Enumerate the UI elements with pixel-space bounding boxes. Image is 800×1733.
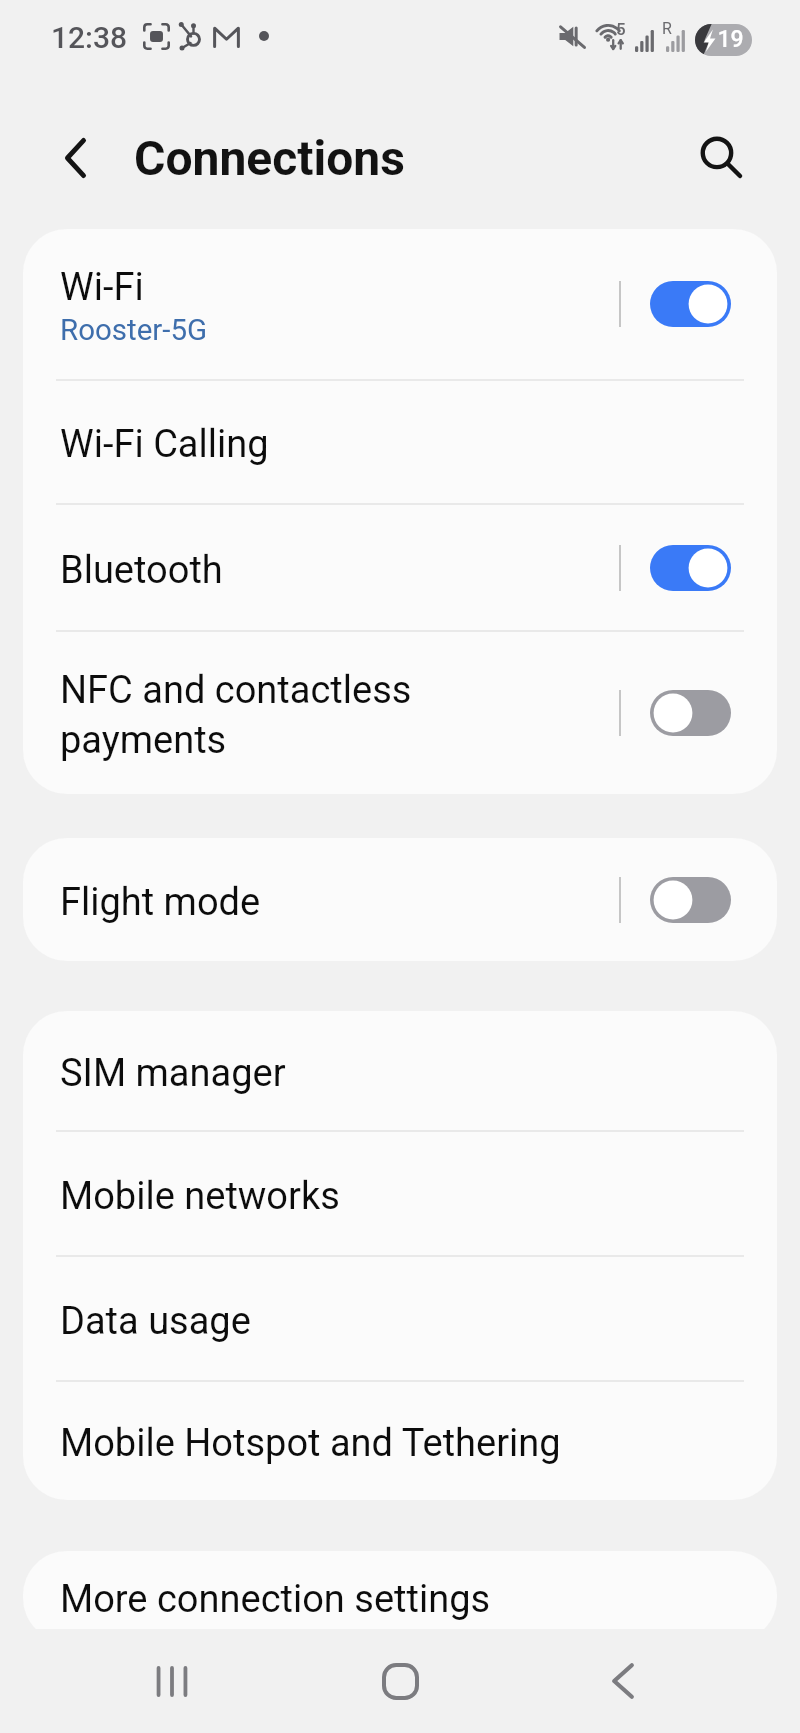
staticText: Mobile Hotspot and Tethering [60, 1416, 561, 1466]
button[interactable]: Flight mode [23, 838, 777, 961]
staticText: 12:38 [51, 20, 128, 55]
staticText: 19 [717, 26, 744, 53]
staticText: NFC and contactless payments [60, 663, 419, 763]
button[interactable]: Mobile networks [23, 1132, 777, 1255]
staticText: Data usage [60, 1294, 251, 1344]
button[interactable]: Back [47, 130, 103, 186]
button[interactable]: Switch on [650, 281, 731, 327]
staticText: Flight mode [60, 875, 261, 925]
button[interactable]: Mobile Hotspot and Tethering [23, 1382, 777, 1500]
button[interactable]: Switch on [650, 545, 731, 591]
button[interactable]: NFC and contactless payments [23, 632, 777, 794]
staticText: SIM manager [60, 1046, 286, 1096]
staticText: Wi-Fi Calling [60, 417, 269, 467]
button[interactable]: Home [336, 1629, 464, 1733]
staticText: Wi-Fi [60, 260, 144, 310]
button[interactable]: Data usage [23, 1257, 777, 1380]
button[interactable]: Wi-Fi [23, 229, 777, 379]
button[interactable]: Search [694, 130, 750, 186]
staticText: Mobile networks [60, 1169, 340, 1219]
staticText: R [662, 19, 672, 38]
staticText: More connection settings [60, 1572, 491, 1622]
staticText: Rooster-5G [60, 313, 208, 348]
staticText: 5 [616, 19, 626, 39]
button[interactable]: More connection settings [23, 1551, 777, 1642]
button[interactable]: Back [559, 1629, 687, 1733]
button[interactable]: Switch off [650, 690, 731, 736]
staticText: Bluetooth [60, 543, 223, 593]
button[interactable]: Bluetooth [23, 505, 777, 630]
button[interactable]: Wi-Fi Calling [23, 381, 777, 503]
button[interactable]: Recent apps [108, 1629, 236, 1733]
button[interactable]: SIM manager [23, 1011, 777, 1130]
staticText: Connections [134, 130, 405, 186]
button[interactable]: Switch off [650, 877, 731, 923]
